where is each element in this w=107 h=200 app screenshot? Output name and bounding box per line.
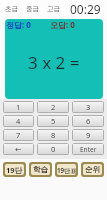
staticText: ← (15, 145, 22, 154)
button[interactable]: 5 (37, 115, 69, 127)
button[interactable]: Enter (72, 143, 104, 155)
button[interactable]: 7 (3, 129, 34, 141)
button[interactable]: 고급 (47, 5, 68, 13)
staticText: 6 (86, 116, 91, 126)
button[interactable]: 19단 (5, 164, 24, 175)
button[interactable]: 2 (37, 101, 69, 113)
staticText: 고급 (47, 5, 60, 13)
staticText: 5 (51, 116, 56, 126)
button[interactable]: 6 (72, 115, 104, 127)
button[interactable]: 8 (37, 129, 69, 141)
staticText: 정답: 0 (6, 19, 31, 30)
staticText: 19단표 (57, 166, 76, 174)
button[interactable]: 초급 (5, 5, 26, 13)
staticText: 2 (51, 102, 56, 112)
staticText: 1 (16, 102, 21, 112)
staticText: 7 (16, 130, 21, 140)
staticText: 00:29 (70, 1, 101, 17)
staticText: 초급 (5, 5, 18, 13)
staticText: 오답: 0 (50, 19, 75, 30)
button[interactable]: 3 (72, 101, 104, 113)
staticText: 0 (51, 144, 56, 154)
button[interactable]: 0 (37, 143, 69, 155)
button[interactable]: 4 (3, 115, 34, 127)
staticText: Enter (80, 145, 97, 154)
staticText: 9 (86, 130, 91, 140)
staticText: 4 (16, 116, 21, 126)
staticText: 학습 (33, 165, 48, 174)
button[interactable]: 19단표 (57, 164, 76, 175)
button[interactable]: 순위 (83, 164, 102, 175)
button[interactable]: 중급 (26, 5, 47, 13)
button[interactable]: 9 (72, 129, 104, 141)
staticText: 중급 (26, 5, 39, 13)
button[interactable]: 1 (3, 101, 34, 113)
staticText: 8 (51, 130, 56, 140)
button[interactable]: 학습 (31, 164, 50, 175)
staticText: 3 (86, 102, 91, 112)
staticText: 19단 (6, 165, 23, 175)
staticText: 3 x 2 = (28, 51, 80, 74)
button[interactable]: ← (3, 143, 34, 155)
staticText: 순위 (85, 165, 100, 174)
